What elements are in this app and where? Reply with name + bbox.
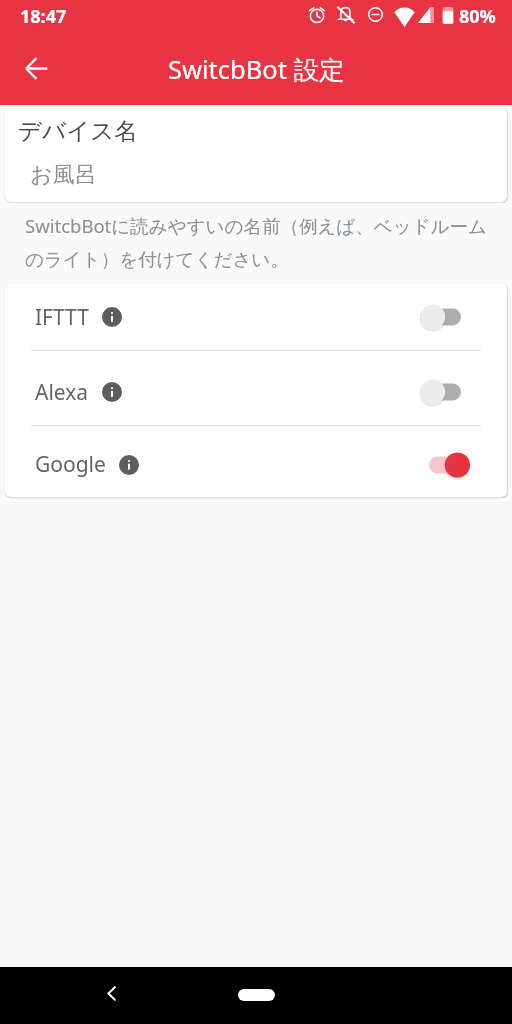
button[interactable]: Switch off: [420, 304, 470, 330]
staticText: Google: [35, 450, 106, 479]
button[interactable]: IFTTT: [5, 284, 507, 350]
button[interactable]: Google: [5, 426, 507, 497]
button[interactable]: Switch on: [420, 452, 470, 478]
button[interactable]: Back: [90, 976, 130, 1016]
staticText: IFTTT: [35, 303, 89, 332]
staticText: Alexa: [35, 378, 89, 407]
staticText: 80%: [459, 4, 496, 29]
staticText: 18:47: [20, 4, 67, 29]
staticText: お風呂: [30, 161, 97, 189]
staticText: SwitcbBotに読みやすいの名前（例えば、ベッドルームのライト）を付けてくだ…: [25, 213, 490, 272]
button[interactable]: Home: [238, 989, 275, 1001]
button[interactable]: Alexa: [5, 351, 507, 425]
staticText: デバイス名: [18, 116, 138, 146]
staticText: SwitcbBot 設定: [168, 52, 345, 87]
button[interactable]: デバイス名: [5, 109, 507, 202]
button[interactable]: Back: [12, 46, 60, 94]
button[interactable]: Switch off: [420, 379, 470, 405]
